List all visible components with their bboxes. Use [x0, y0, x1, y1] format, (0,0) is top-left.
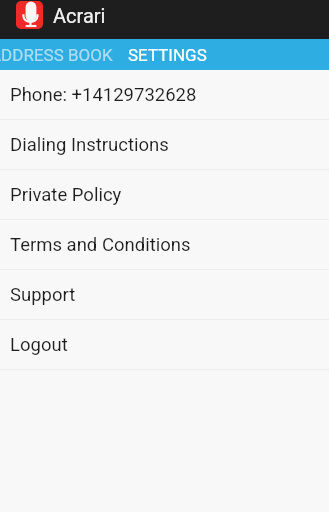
button[interactable]: Terms and Conditions	[0, 220, 329, 269]
button[interactable]: Support	[0, 270, 329, 319]
staticText: Phone: +14129732628	[10, 84, 197, 106]
staticText: Private Policy	[10, 184, 122, 206]
other: Acrari app icon	[16, 1, 43, 29]
staticText: Dialing Instructions	[10, 134, 169, 156]
button[interactable]: Logout	[0, 320, 329, 369]
button[interactable]: Dialing Instructions	[0, 120, 329, 169]
staticText: Terms and Conditions	[10, 234, 191, 256]
staticText: SETTINGS	[128, 45, 207, 65]
staticText: ADDRESS BOOK	[0, 45, 113, 65]
staticText: Logout	[10, 334, 68, 356]
button[interactable]: Private Policy	[0, 170, 329, 219]
staticText: Support	[10, 284, 76, 306]
staticText: Acrari	[53, 4, 106, 27]
button[interactable]: Acrari app icon	[0, 0, 110, 39]
button[interactable]: ADDRESS BOOK	[0, 39, 120, 70]
button[interactable]: SETTINGS	[120, 39, 215, 70]
button[interactable]: Phone: +14129732628	[0, 70, 329, 119]
